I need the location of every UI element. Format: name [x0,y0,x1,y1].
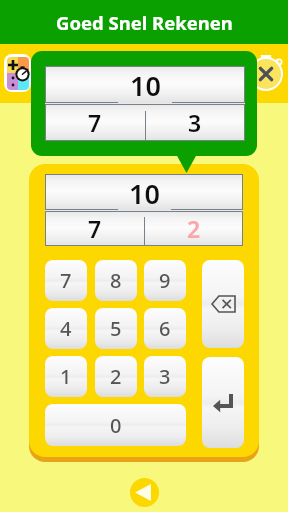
button[interactable]: 9 [144,260,186,301]
button[interactable]: 1 [45,356,87,397]
button[interactable]: Backspace [202,260,244,348]
staticText: 9 [159,267,171,294]
staticText: Goed Snel Rekenen [56,10,233,35]
button[interactable]: Enter [202,357,244,448]
staticText: 2 [187,213,201,244]
staticText: 7 [88,213,102,244]
button[interactable]: 4 [45,308,87,349]
button[interactable]: 5 [95,308,137,349]
staticText: 5 [110,315,122,342]
button[interactable]: Timer [249,57,288,97]
staticText: 8 [110,267,122,294]
staticText: 2 [110,363,122,390]
staticText: 3 [159,363,171,390]
button[interactable]: 7 [45,260,87,301]
staticText: 4 [60,315,72,342]
staticText: 0 [110,412,122,439]
button[interactable]: App icon [4,54,31,92]
button[interactable]: 8 [95,260,137,301]
staticText: 10 [130,67,161,102]
staticText: 1 [60,363,72,390]
button[interactable]: 3 [144,356,186,397]
button[interactable]: 2 [95,356,137,397]
staticText: 10 [129,175,160,209]
staticText: 7 [88,107,102,138]
button[interactable]: 0 [45,404,186,446]
button[interactable]: Back [130,478,159,507]
staticText: 3 [188,107,202,138]
staticText: 6 [159,315,171,342]
button[interactable]: 6 [144,308,186,349]
staticText: 7 [60,267,72,294]
